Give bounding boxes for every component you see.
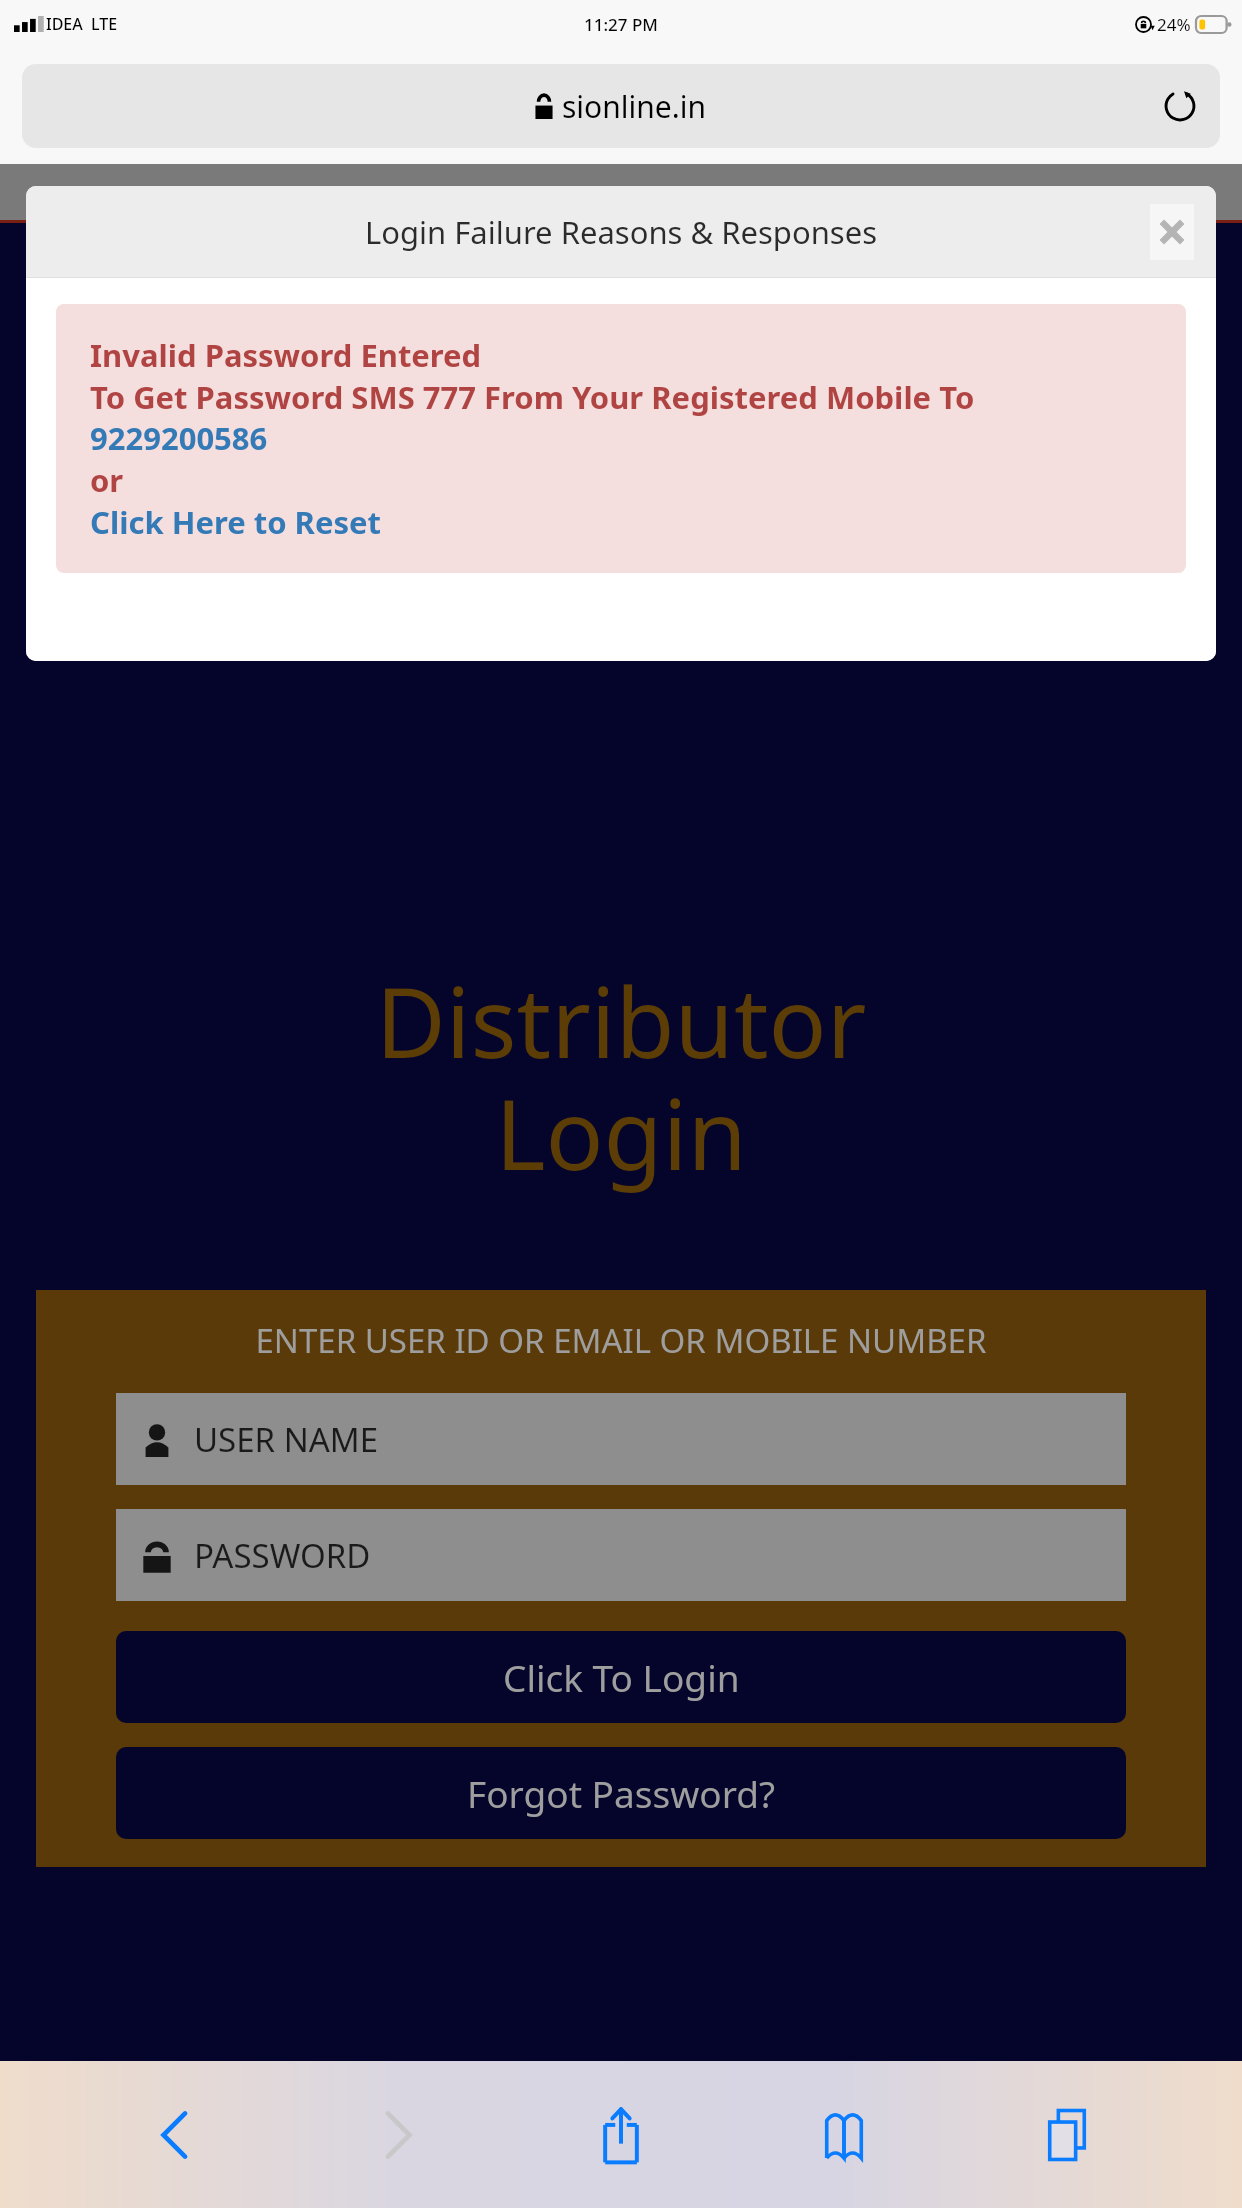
staticText: Forgot Password? bbox=[467, 1768, 776, 1818]
button[interactable]: USER NAME bbox=[116, 1393, 1126, 1485]
staticText: or bbox=[90, 459, 124, 501]
button[interactable]: Forward bbox=[350, 2087, 446, 2183]
button[interactable]: sionline.in bbox=[22, 64, 1220, 148]
button[interactable]: Click Here to Reset bbox=[90, 501, 381, 543]
staticText: PASSWORD bbox=[194, 1533, 371, 1578]
staticText: IDEA bbox=[46, 13, 83, 35]
staticText: LTE bbox=[91, 13, 118, 35]
button[interactable]: Click To Login bbox=[116, 1631, 1126, 1723]
button[interactable]: Bookmarks bbox=[796, 2087, 892, 2183]
button[interactable]: Share bbox=[573, 2087, 669, 2183]
staticText: 11:27 PM bbox=[584, 13, 658, 36]
staticText: Click Here to Reset bbox=[90, 501, 381, 543]
staticText: USER NAME bbox=[194, 1417, 379, 1462]
staticText: Login Failure Reasons & Responses bbox=[365, 211, 877, 253]
button[interactable]: Forgot Password? bbox=[116, 1747, 1126, 1839]
staticText: Click To Login bbox=[503, 1652, 740, 1702]
button[interactable]: Reload bbox=[1154, 80, 1206, 132]
staticText: 24% bbox=[1157, 13, 1191, 36]
button[interactable]: Tabs bbox=[1019, 2087, 1115, 2183]
staticText: Invalid Password Entered bbox=[90, 334, 482, 376]
staticText: Distributor Login bbox=[0, 955, 1242, 1198]
button[interactable]: PASSWORD bbox=[116, 1509, 1126, 1601]
staticText: ENTER USER ID OR EMAIL OR MOBILE NUMBER bbox=[66, 1318, 1176, 1363]
button[interactable]: Back bbox=[127, 2087, 223, 2183]
staticText: To Get Password SMS 777 From Your Regist… bbox=[90, 376, 1152, 459]
staticText: sionline.in bbox=[562, 86, 707, 127]
button[interactable]: Close bbox=[1150, 204, 1194, 260]
